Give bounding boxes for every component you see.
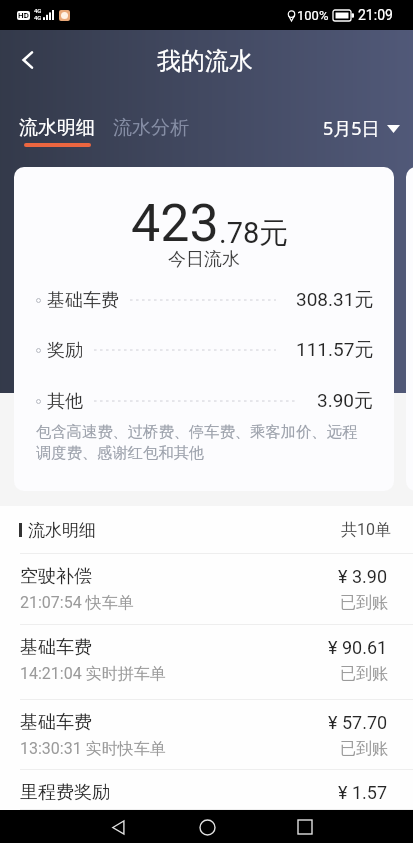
staticText: 14:21:04 实时拼车单: [20, 664, 166, 684]
staticText: 423: [131, 193, 219, 254]
staticText: 流水明细: [28, 520, 96, 541]
staticText: ¥ 1.57: [338, 782, 388, 803]
staticText: 4G: [34, 7, 42, 14]
button[interactable]: 流水分析: [104, 116, 199, 140]
staticText: 100%: [297, 8, 329, 23]
staticText: 其他: [47, 390, 83, 413]
button[interactable]: 空驶补偿: [0, 554, 413, 625]
button[interactable]: 基础车费: [0, 625, 413, 700]
staticText: 流水明细: [19, 116, 95, 140]
staticText: 21:07:54 快车单: [20, 593, 134, 613]
staticText: 3.90元: [317, 389, 374, 413]
staticText: 已到账: [340, 664, 388, 684]
staticText: 流水分析: [113, 116, 189, 140]
button[interactable]: Back: [102, 811, 134, 843]
staticText: 基础车费: [20, 711, 92, 734]
button[interactable]: 里程费奖励: [0, 770, 413, 810]
staticText: 今日流水: [14, 248, 394, 271]
button[interactable]: Home: [191, 811, 223, 843]
staticText: .78元: [219, 215, 289, 252]
staticText: 包含高速费、过桥费、停车费、乘客加价、远程 调度费、感谢红包和其他: [36, 422, 358, 463]
staticText: ¥ 3.90: [338, 566, 388, 587]
button[interactable]: 流水明细: [0, 116, 104, 147]
button[interactable]: 基础车费: [0, 700, 413, 770]
staticText: 21:09: [358, 7, 393, 23]
staticText: 基础车费: [47, 289, 119, 312]
button[interactable]: 5月5日: [323, 116, 413, 141]
staticText: 我的流水: [157, 46, 253, 76]
staticText: 已到账: [340, 593, 388, 613]
button[interactable]: Recents: [289, 811, 321, 843]
staticText: 13:30:31 实时快车单: [20, 739, 166, 759]
button[interactable]: Back: [10, 42, 46, 78]
staticText: 共10单: [341, 520, 391, 540]
staticText: ¥ 57.70: [328, 712, 388, 733]
staticText: 奖励: [47, 339, 83, 362]
staticText: 4G: [34, 14, 42, 21]
staticText: 308.31元: [296, 288, 374, 312]
staticText: ¥ 90.61: [328, 637, 388, 658]
staticText: 5月5日: [323, 116, 380, 141]
staticText: 基础车费: [20, 636, 92, 659]
staticText: 已到账: [340, 739, 388, 759]
staticText: HD: [18, 11, 29, 20]
staticText: 空驶补偿: [20, 565, 92, 588]
button[interactable]: 423: [14, 167, 394, 491]
staticText: 111.57元: [296, 338, 374, 362]
staticText: 里程费奖励: [20, 781, 110, 804]
